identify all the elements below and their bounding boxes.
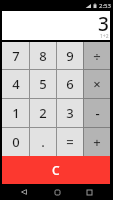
button[interactable]: 1 — [2, 99, 29, 127]
button[interactable]: 9 — [57, 42, 83, 69]
staticText: 3 — [66, 104, 74, 122]
button[interactable]: 4 — [2, 70, 29, 98]
button[interactable]: × — [84, 70, 110, 98]
button[interactable]: 7 — [2, 42, 29, 69]
staticText: 1+2 — [100, 33, 109, 40]
button[interactable]: = — [57, 128, 83, 156]
staticText: . — [41, 133, 45, 151]
staticText: 3 — [98, 11, 109, 37]
staticText: 9 — [66, 47, 74, 65]
staticText: - — [95, 104, 100, 122]
staticText: 8 — [39, 47, 47, 65]
button[interactable]: 5 — [30, 70, 56, 98]
button[interactable]: Recents — [81, 184, 97, 200]
button[interactable]: ÷ — [84, 42, 110, 69]
button[interactable]: Back — [16, 184, 32, 200]
staticText: 5 — [39, 75, 47, 93]
staticText: = — [66, 133, 74, 151]
staticText: ÷ — [93, 47, 101, 65]
button[interactable]: 2 — [30, 99, 56, 127]
staticText: 2 — [39, 104, 47, 122]
button[interactable]: - — [84, 99, 110, 127]
staticText: 7 — [12, 47, 20, 65]
button[interactable]: . — [30, 128, 56, 156]
button[interactable]: 3 — [57, 99, 83, 127]
staticText: 2:53 — [99, 2, 111, 10]
staticText: × — [93, 75, 101, 93]
staticText: 0 — [12, 133, 20, 151]
staticText: + — [93, 133, 101, 151]
button[interactable]: C — [2, 156, 110, 184]
button[interactable]: 0 — [2, 128, 29, 156]
staticText: 1 — [12, 104, 20, 122]
staticText: C — [52, 162, 60, 178]
button[interactable]: + — [84, 128, 110, 156]
button[interactable]: 6 — [57, 70, 83, 98]
button[interactable]: Home — [49, 184, 65, 200]
staticText: 4 — [12, 75, 20, 93]
staticText: 6 — [66, 75, 74, 93]
button[interactable]: 8 — [30, 42, 56, 69]
